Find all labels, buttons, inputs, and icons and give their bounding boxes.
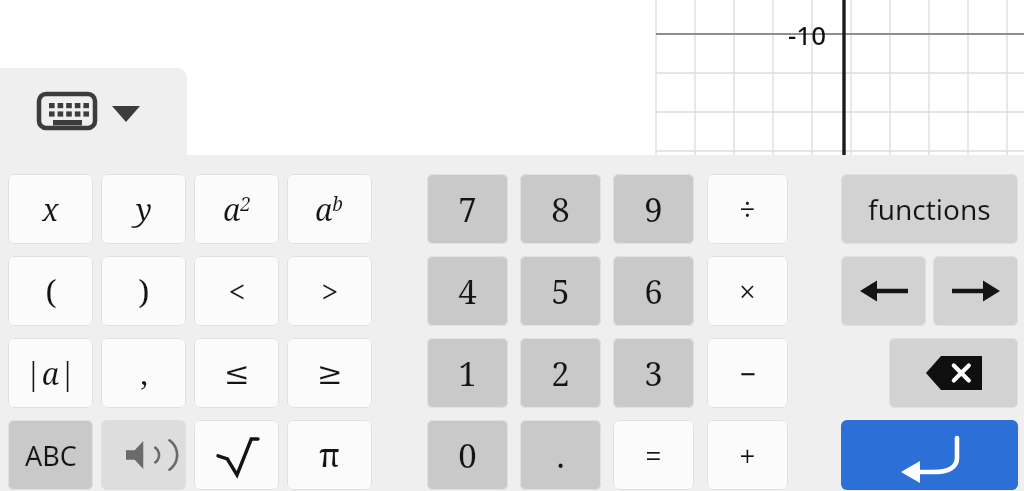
button[interactable]: =: [613, 420, 694, 490]
staticText: ABC: [25, 437, 77, 474]
button[interactable]: 0: [427, 420, 508, 490]
button[interactable]: ÷: [707, 174, 788, 244]
staticText: x: [42, 189, 59, 230]
staticText: .: [556, 433, 565, 478]
button[interactable]: −: [707, 338, 788, 408]
staticText: ≥: [317, 355, 343, 391]
staticText: y: [136, 189, 152, 230]
button[interactable]: .: [520, 420, 601, 490]
staticText: π: [319, 433, 340, 477]
button[interactable]: (: [8, 256, 93, 326]
button[interactable]: x: [8, 174, 93, 244]
button[interactable]: Backspace: [889, 338, 1018, 408]
button[interactable]: <: [194, 256, 279, 326]
button[interactable]: 2: [520, 338, 601, 408]
button[interactable]: Keyboard: [36, 92, 98, 130]
staticText: a2: [223, 189, 251, 230]
button[interactable]: Move cursor left: [841, 256, 926, 326]
staticText: =: [645, 435, 662, 476]
staticText: 8: [551, 187, 570, 232]
staticText: >: [321, 270, 339, 312]
button[interactable]: More options: [106, 100, 146, 126]
button[interactable]: Enter: [841, 420, 1018, 490]
button[interactable]: 5: [520, 256, 601, 326]
staticText: 3: [644, 351, 663, 396]
button[interactable]: 1: [427, 338, 508, 408]
staticText: 7: [458, 187, 477, 232]
staticText: 4: [458, 269, 477, 314]
button[interactable]: [194, 420, 279, 490]
staticText: 1: [458, 351, 477, 396]
button[interactable]: ×: [707, 256, 788, 326]
staticText: |a|: [25, 353, 76, 394]
button[interactable]: 7: [427, 174, 508, 244]
button[interactable]: functions: [841, 174, 1018, 244]
staticText: +: [739, 435, 756, 476]
button[interactable]: ): [101, 256, 186, 326]
staticText: 2: [551, 351, 570, 396]
staticText: 0: [458, 433, 477, 478]
button[interactable]: 9: [613, 174, 694, 244]
button[interactable]: ab: [287, 174, 372, 244]
staticText: ÷: [739, 189, 756, 230]
button[interactable]: 4: [427, 256, 508, 326]
button[interactable]: ≤: [194, 338, 279, 408]
staticText: ≤: [224, 355, 250, 391]
button[interactable]: y: [101, 174, 186, 244]
staticText: 6: [644, 269, 663, 314]
button[interactable]: a2: [194, 174, 279, 244]
staticText: ,: [140, 352, 148, 394]
staticText: ×: [739, 271, 756, 312]
staticText: functions: [868, 190, 991, 228]
button[interactable]: >: [287, 256, 372, 326]
button[interactable]: ABC: [8, 420, 93, 490]
staticText: (: [45, 269, 57, 314]
staticText: <: [228, 270, 246, 312]
staticText: ): [138, 269, 150, 314]
button[interactable]: 8: [520, 174, 601, 244]
staticText: ab: [315, 189, 344, 230]
staticText: 5: [551, 269, 570, 314]
button[interactable]: ≥: [287, 338, 372, 408]
staticText: 9: [644, 187, 663, 232]
button[interactable]: ,: [101, 338, 186, 408]
button[interactable]: 3: [613, 338, 694, 408]
button[interactable]: Move cursor right: [933, 256, 1018, 326]
button[interactable]: +: [707, 420, 788, 490]
button[interactable]: Sound: [101, 420, 186, 490]
staticText: -10: [788, 17, 827, 52]
button[interactable]: |a|: [8, 338, 93, 408]
button[interactable]: π: [287, 420, 372, 490]
staticText: −: [739, 353, 757, 394]
button[interactable]: 6: [613, 256, 694, 326]
